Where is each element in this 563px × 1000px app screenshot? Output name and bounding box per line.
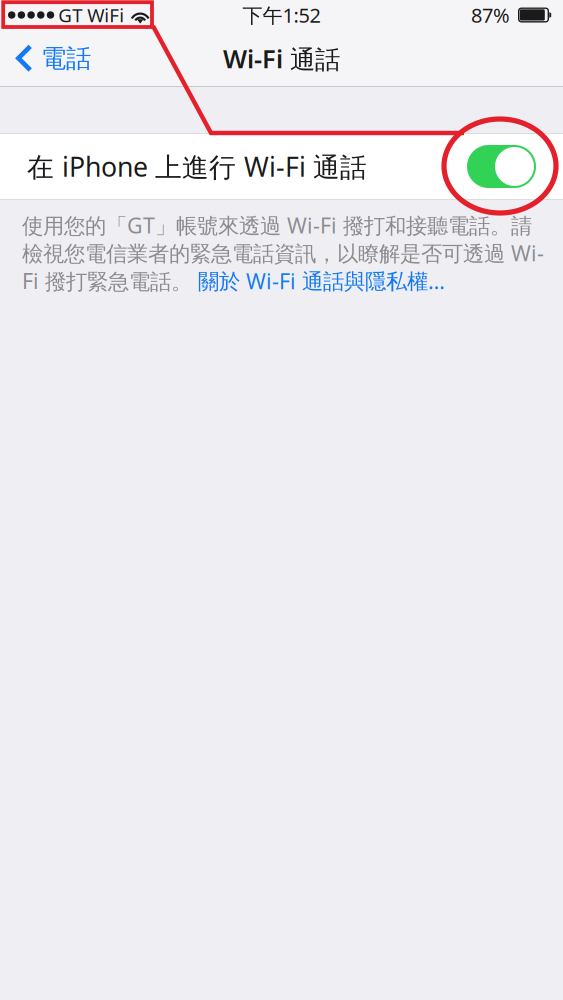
staticText: 使用您的「GT」帳號來透過 Wi-Fi 撥打和接聽電話。請 bbox=[22, 211, 532, 239]
staticText: GT WiFi bbox=[58, 3, 124, 27]
staticText: 電話 bbox=[41, 43, 91, 74]
staticText: 在 iPhone 上進行 Wi-Fi 通話 bbox=[27, 149, 367, 184]
button[interactable]: 在 iPhone 上進行 Wi-Fi 通話 bbox=[0, 134, 563, 199]
staticText: 下午1:52 bbox=[242, 2, 320, 28]
button[interactable]: 關於 Wi-Fi 通話與隱私權… bbox=[192, 267, 445, 295]
button[interactable]: Back to 電話 bbox=[0, 30, 190, 87]
staticText: 關於 Wi-Fi 通話與隱私權… bbox=[192, 267, 445, 295]
staticText: 檢視您電信業者的緊急電話資訊，以瞭解是否可透過 Wi- bbox=[22, 239, 544, 267]
staticText: Wi-Fi 通話 bbox=[223, 42, 340, 75]
staticText: 87% bbox=[471, 2, 510, 28]
staticText: Fi 撥打緊急電話。 bbox=[22, 267, 192, 295]
